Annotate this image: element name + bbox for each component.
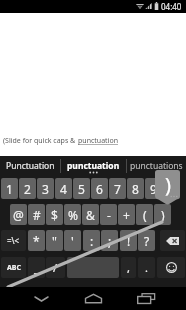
button[interactable]: punctuation — [61, 156, 126, 176]
button[interactable]: + — [118, 204, 135, 225]
staticText: 0 — [168, 181, 175, 197]
button[interactable]: Home — [68, 287, 119, 310]
staticText: punctuation — [67, 160, 120, 172]
staticText: 9 — [150, 181, 157, 197]
button[interactable]: Delete — [160, 230, 185, 251]
button[interactable]: 9 — [145, 178, 162, 199]
staticText: ABC — [7, 263, 21, 273]
button[interactable]: ABC — [1, 257, 26, 278]
button[interactable]: 7 — [109, 178, 126, 199]
staticText: Punctuation — [6, 160, 55, 172]
staticText: punctuation — [78, 136, 118, 146]
staticText: punctuations — [130, 160, 183, 172]
button[interactable]: & — [82, 204, 99, 225]
staticText: ' — [71, 233, 74, 249]
button[interactable]: punctuations — [127, 156, 186, 176]
staticText: . — [145, 260, 148, 275]
button[interactable]: 3 — [37, 178, 54, 199]
staticText: ? — [144, 233, 150, 249]
staticText: ( — [143, 207, 147, 223]
button[interactable]: 5 — [73, 178, 90, 199]
button[interactable]: 1 — [1, 178, 18, 199]
staticText: 8 — [132, 181, 139, 197]
staticText: 1 — [6, 181, 13, 197]
button[interactable]: Punctuation — [0, 156, 60, 176]
staticText: - — [107, 207, 111, 223]
button[interactable]: - — [100, 204, 117, 225]
staticText: 2 — [24, 181, 31, 197]
staticText: + — [123, 207, 130, 223]
staticText: 04:40 — [161, 1, 182, 12]
button[interactable]: ( — [136, 204, 153, 225]
button[interactable]: @ — [10, 204, 27, 225]
staticText: ) — [161, 207, 165, 223]
staticText: =\< — [7, 235, 20, 246]
staticText: / — [53, 260, 58, 275]
staticText: : — [90, 233, 94, 249]
staticText: (Slide for quick caps & — [3, 136, 78, 146]
staticText: , — [127, 260, 130, 275]
button[interactable]: 8 — [127, 178, 144, 199]
button[interactable]: Hide keyboard — [16, 287, 67, 310]
button[interactable]: % — [64, 204, 81, 225]
button[interactable]: $ — [46, 204, 63, 225]
staticText: 6 — [96, 181, 103, 197]
button[interactable]: / — [46, 257, 65, 278]
button[interactable]: ; — [101, 230, 118, 251]
staticText: $ — [51, 207, 58, 223]
button[interactable]: ) — [154, 204, 171, 225]
staticText: ; — [108, 233, 112, 249]
button[interactable]: : — [83, 230, 100, 251]
button[interactable]: ! — [120, 230, 137, 251]
button[interactable]: ' — [64, 230, 81, 251]
staticText: & — [86, 207, 95, 223]
staticText: " — [52, 233, 57, 249]
staticText: _ — [34, 260, 39, 275]
button[interactable]: Recent apps — [120, 287, 171, 310]
button[interactable]: " — [46, 230, 63, 251]
button[interactable]: 6 — [91, 178, 108, 199]
button[interactable]: , — [121, 257, 136, 278]
staticText: ! — [127, 233, 131, 249]
staticText: 4 — [60, 181, 67, 197]
staticText: @ — [13, 207, 24, 223]
staticText: ) — [165, 171, 171, 198]
button[interactable]: Emoji — [157, 257, 185, 278]
staticText: * — [33, 233, 40, 249]
staticText: % — [68, 207, 78, 223]
staticText: # — [33, 207, 41, 223]
staticText: 3 — [42, 181, 49, 197]
button[interactable]: _ — [28, 257, 45, 278]
button[interactable]: * — [28, 230, 45, 251]
button[interactable]: Space — [67, 257, 119, 278]
button[interactable]: ? — [138, 230, 155, 251]
button[interactable]: 4 — [55, 178, 72, 199]
button[interactable]: =\< — [1, 230, 26, 251]
staticText: 7 — [114, 181, 121, 197]
staticText: 5 — [78, 181, 85, 197]
button[interactable]: 0 — [163, 178, 180, 199]
button[interactable]: . — [138, 257, 155, 278]
button[interactable]: 2 — [19, 178, 36, 199]
button[interactable]: # — [28, 204, 45, 225]
